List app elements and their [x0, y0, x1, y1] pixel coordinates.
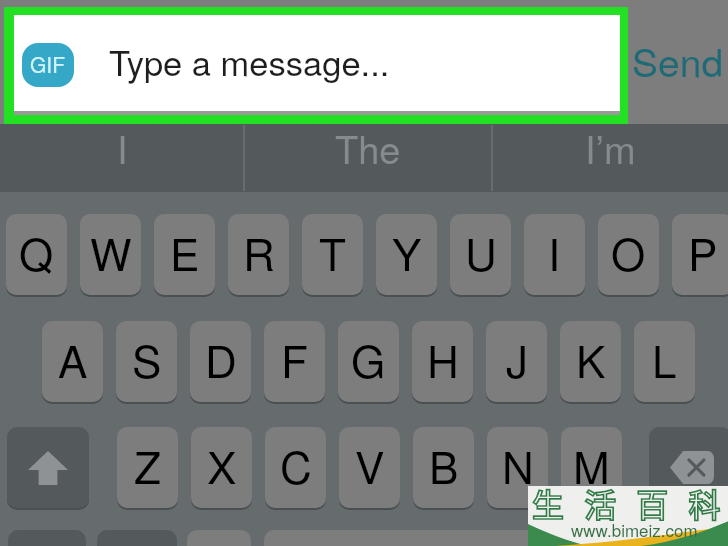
button[interactable]: Shift [7, 427, 89, 508]
button[interactable]: A [42, 321, 103, 402]
staticText: R [243, 220, 275, 283]
staticText: K [576, 327, 606, 390]
button[interactable]: D [190, 321, 251, 402]
button[interactable]: Y [376, 214, 437, 295]
button[interactable]: K [560, 321, 621, 402]
button[interactable]: X [191, 427, 252, 508]
button[interactable]: W [80, 214, 141, 295]
staticText: A [58, 327, 88, 390]
staticText: Z [134, 433, 161, 496]
button[interactable]: I [524, 214, 585, 295]
staticText: W [90, 220, 132, 283]
staticText: F [281, 327, 308, 390]
button[interactable]: P [672, 214, 728, 295]
staticText: P [688, 220, 718, 283]
button[interactable]: G [338, 321, 399, 402]
staticText: H [427, 327, 459, 390]
staticText: X [207, 433, 237, 496]
staticText: I’m [585, 120, 636, 174]
button[interactable]: Backspace [649, 427, 728, 508]
staticText: T [319, 220, 346, 283]
staticText: G [351, 327, 386, 390]
button[interactable]: F [264, 321, 325, 402]
staticText: M [573, 433, 610, 496]
staticText: U [465, 220, 497, 283]
button[interactable]: Z [117, 427, 178, 508]
button[interactable]: I’m [492, 124, 728, 192]
button[interactable]: S [116, 321, 177, 402]
staticText: V [355, 433, 385, 496]
staticText: 生活百科 [532, 480, 728, 526]
staticText: N [502, 433, 534, 496]
staticText: Q [19, 220, 54, 283]
button[interactable] [264, 530, 594, 546]
button[interactable]: T [302, 214, 363, 295]
button[interactable]: L [634, 321, 695, 402]
staticText: O [611, 220, 646, 283]
button[interactable]: E [154, 214, 215, 295]
button[interactable]: V [339, 427, 400, 508]
staticText: Send [632, 32, 724, 88]
staticText: Type a message... [109, 36, 390, 85]
button[interactable]: U [450, 214, 511, 295]
button[interactable]: Emoji [97, 530, 177, 546]
staticText: B [429, 433, 459, 496]
button[interactable]: O [598, 214, 659, 295]
staticText: Y [392, 220, 422, 283]
button[interactable]: B [413, 427, 474, 508]
button[interactable]: GIF [22, 43, 74, 87]
button[interactable]: Send [631, 15, 728, 111]
staticText: L [652, 327, 677, 390]
button[interactable]: M [561, 427, 622, 508]
button[interactable]: R [228, 214, 289, 295]
button[interactable]: C [265, 427, 326, 508]
button[interactable]: I [0, 124, 244, 192]
staticText: S [132, 327, 162, 390]
staticText: J [506, 327, 528, 390]
staticText: E [170, 220, 200, 283]
staticText: D [205, 327, 237, 390]
button[interactable]: Numbers [8, 530, 86, 546]
button[interactable]: GIF [14, 15, 620, 111]
button[interactable]: H [412, 321, 473, 402]
button[interactable]: The [244, 124, 492, 192]
button[interactable]: J [486, 321, 547, 402]
staticText: www.bimeiz.com [571, 517, 698, 541]
staticText: GIF [30, 49, 66, 79]
button[interactable]: Q [6, 214, 67, 295]
staticText: The [335, 120, 401, 174]
button[interactable]: Dictation [187, 530, 251, 546]
staticText: I [117, 120, 128, 174]
staticText: I [548, 220, 561, 283]
button[interactable]: N [487, 427, 548, 508]
staticText: C [280, 433, 312, 496]
